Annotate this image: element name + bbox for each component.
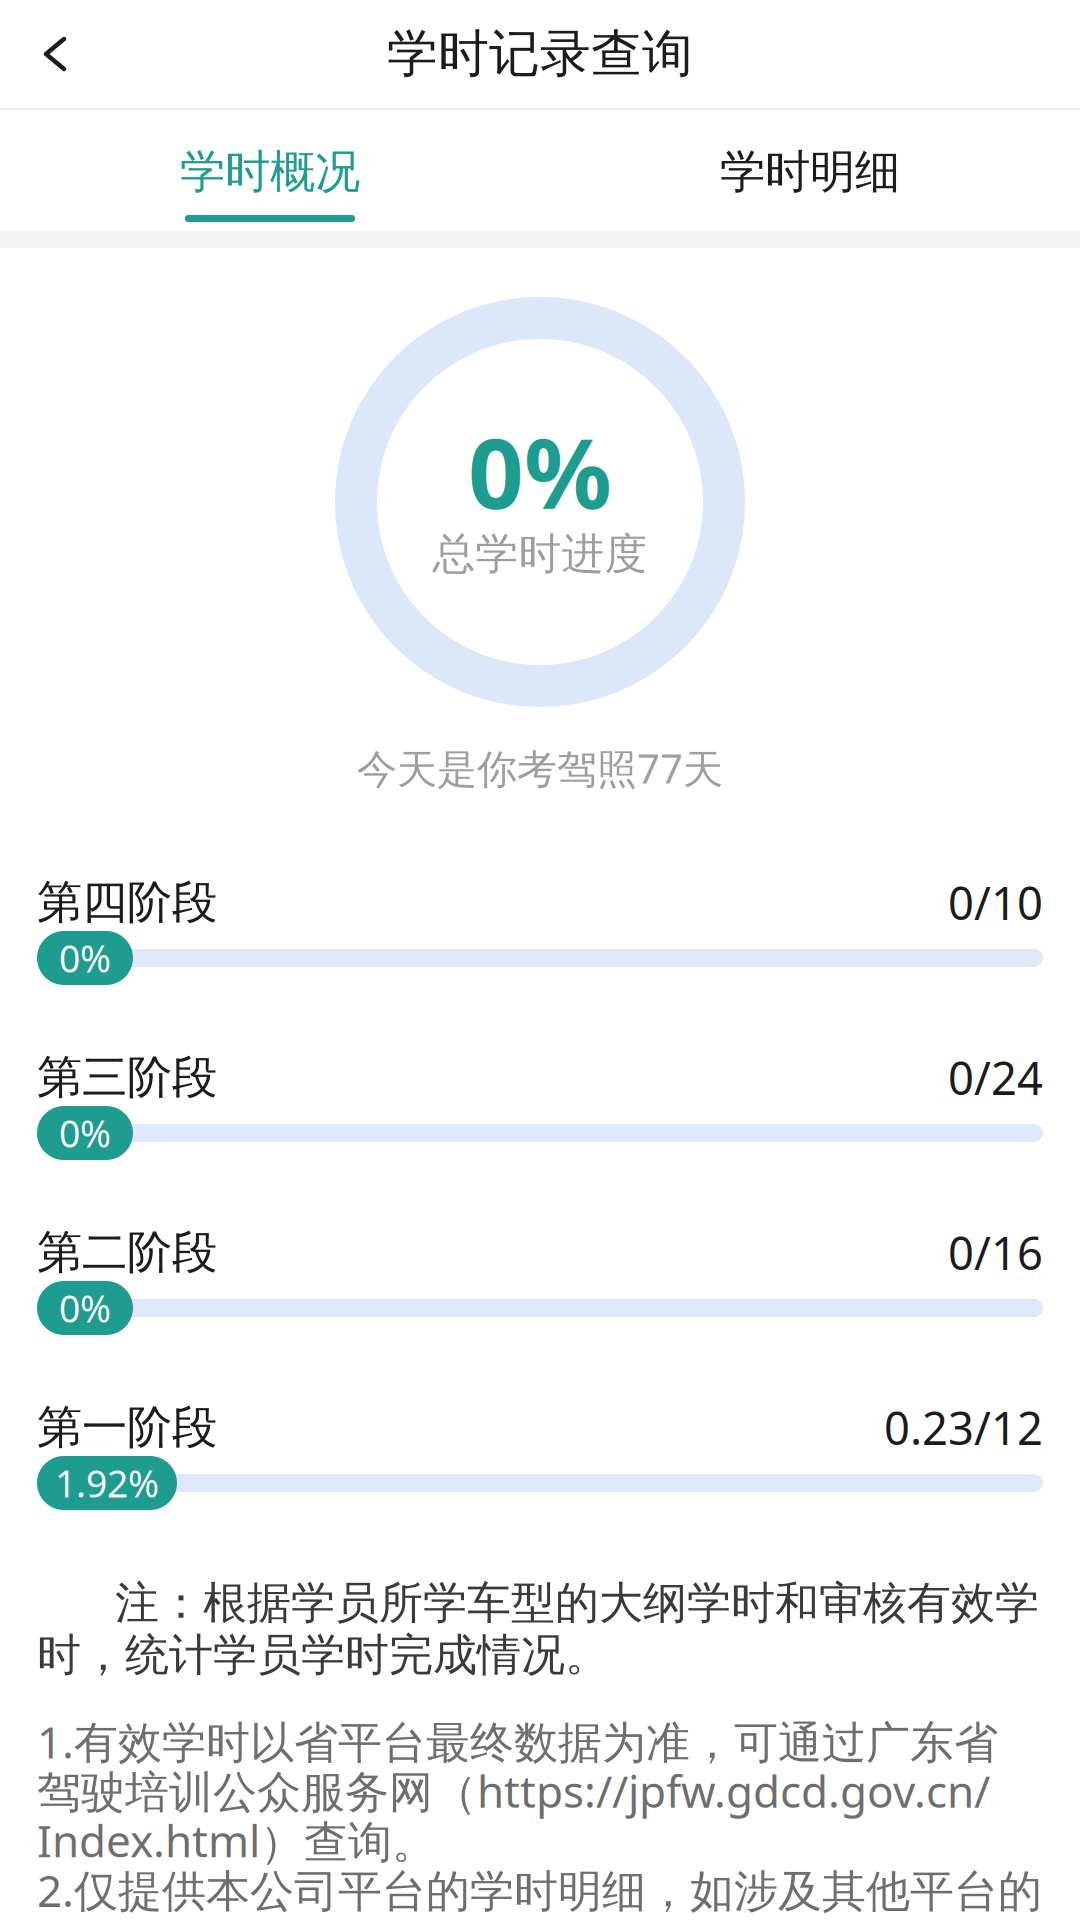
staticText: 学时记录查询	[387, 23, 693, 85]
staticText: 第三阶段	[37, 1050, 217, 1105]
staticText: 总学时进度	[432, 528, 647, 580]
button[interactable]: 学时明细	[540, 110, 1080, 231]
staticText: 0%	[468, 406, 612, 536]
staticText: 注：根据学员所学车型的大纲学时和审核有效学 时，统计学员学时完成情况。	[37, 1576, 1039, 1682]
staticText: 0%	[59, 1108, 111, 1158]
staticText: 今天是你考驾照77天	[357, 741, 723, 794]
staticText: 第四阶段	[37, 875, 217, 930]
staticText: 学时明细	[720, 144, 900, 200]
staticText: 0/10	[948, 872, 1043, 933]
staticText: 0/16	[948, 1222, 1043, 1283]
button[interactable]: Back	[0, 0, 110, 108]
staticText: 1.有效学时以省平台最终数据为准，可通过广东省 驾驶培训公众服务网（https:…	[37, 1712, 1042, 1919]
staticText: 1.92%	[55, 1458, 159, 1508]
staticText: 学时概况	[180, 144, 360, 200]
button[interactable]: 学时概况	[0, 110, 540, 231]
staticText: 第二阶段	[37, 1225, 217, 1280]
staticText: 0/24	[948, 1047, 1043, 1108]
staticText: 0.23/12	[884, 1397, 1043, 1458]
staticText: 第一阶段	[37, 1400, 217, 1455]
staticText: 0%	[59, 1283, 111, 1333]
staticText: 0%	[59, 933, 111, 983]
